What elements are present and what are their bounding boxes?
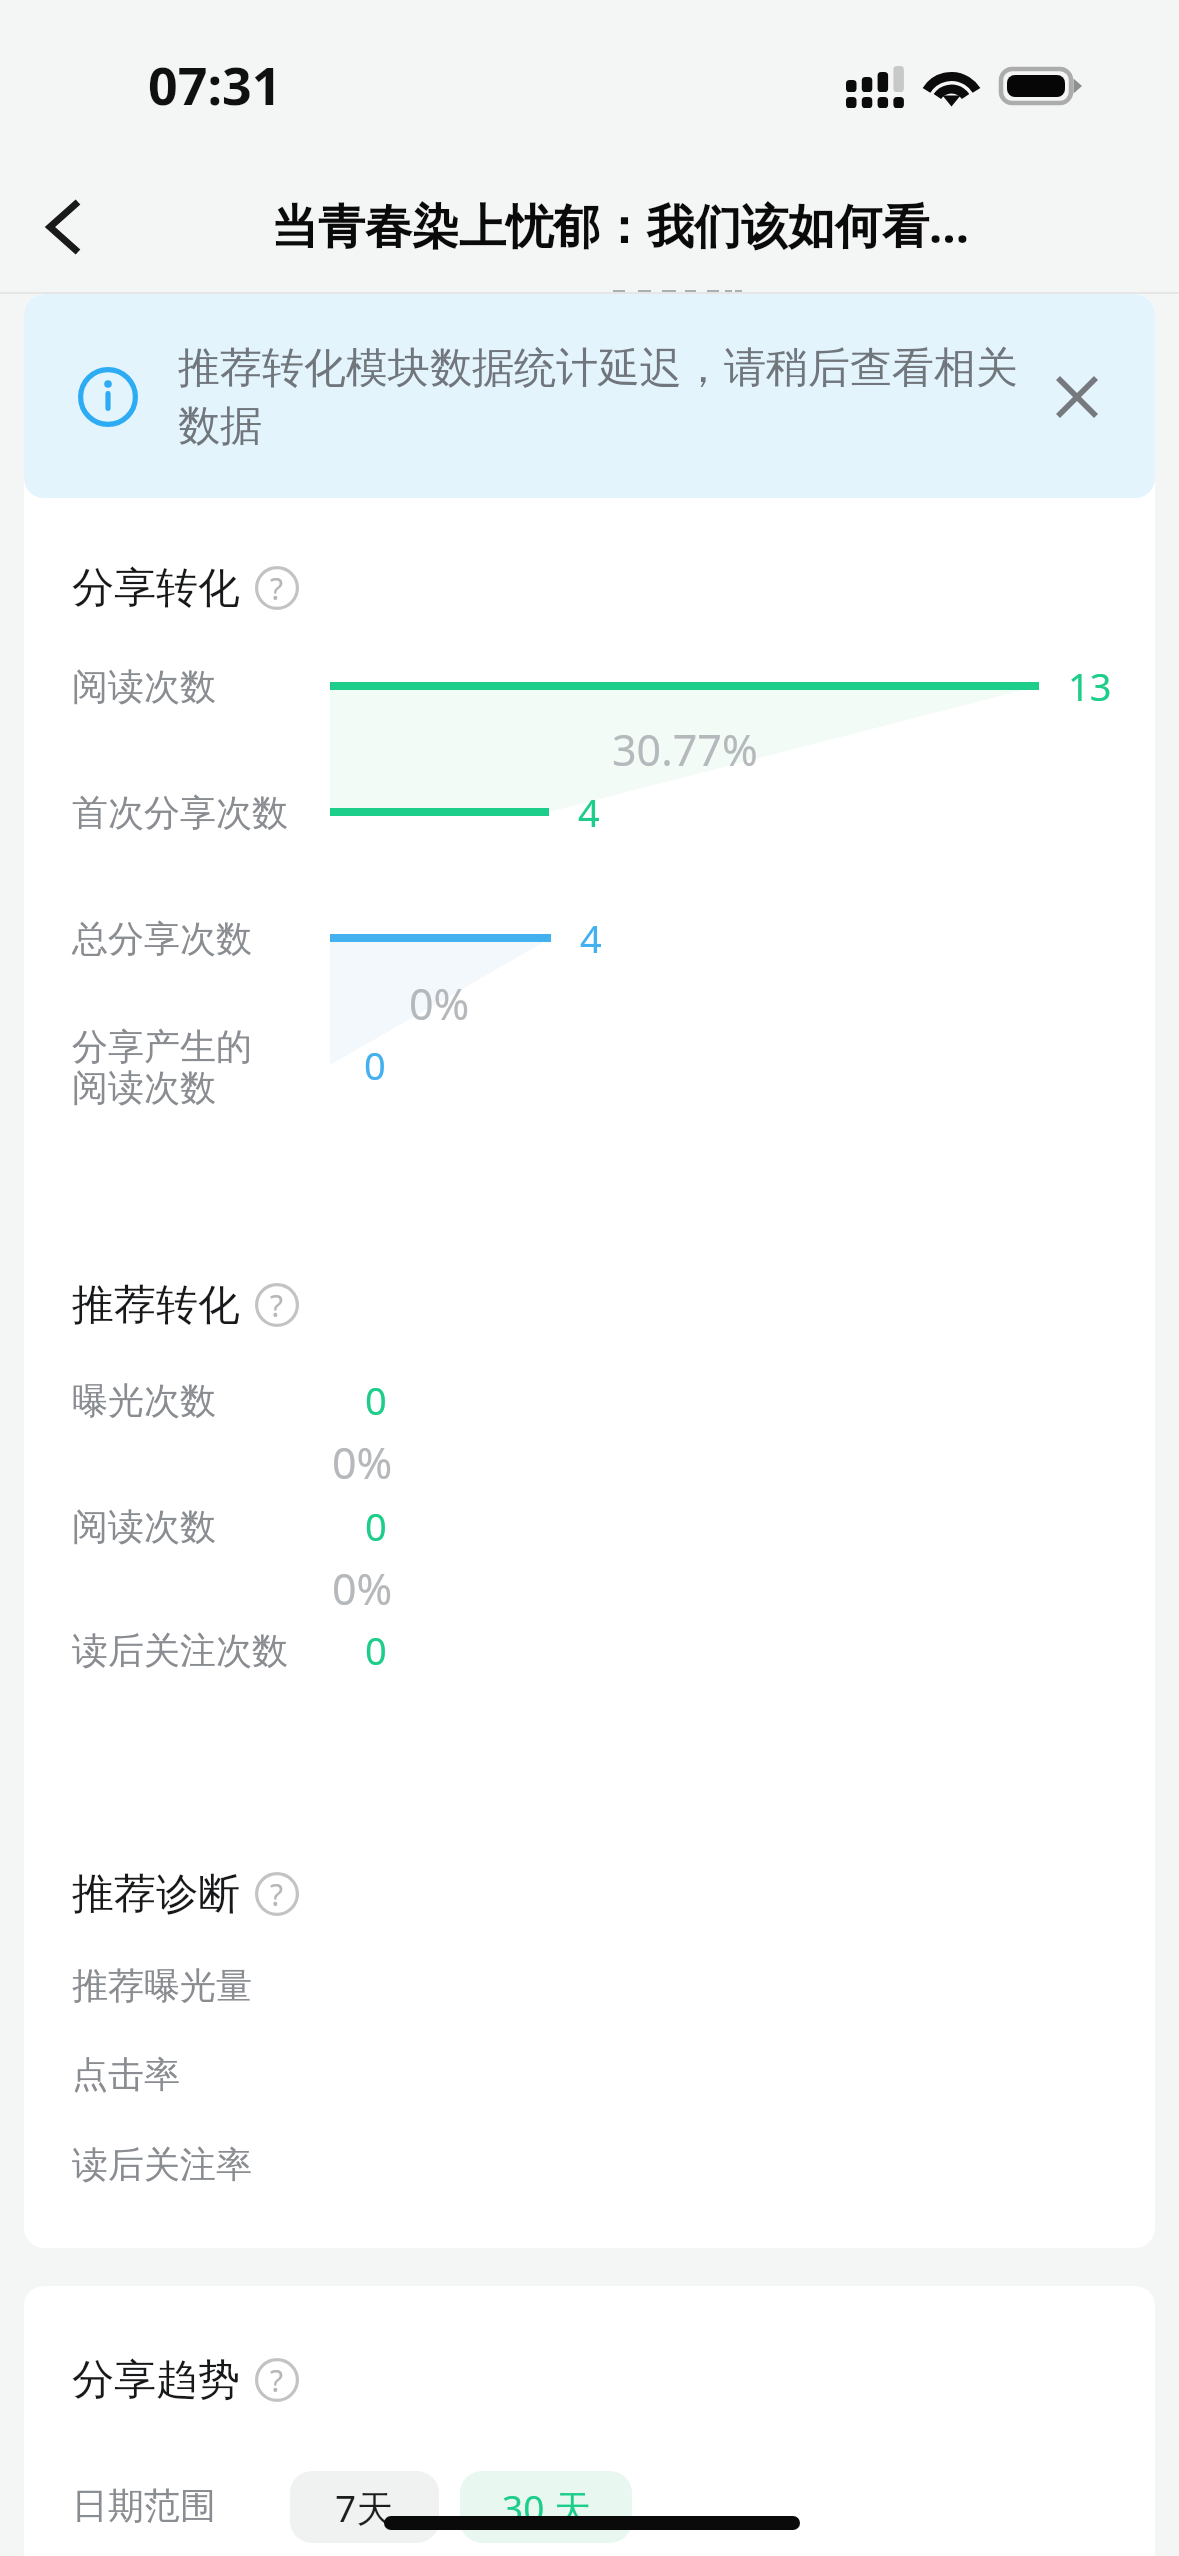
staticText: 曝光次数: [72, 1378, 216, 1423]
button[interactable]: Help: [254, 1282, 300, 1328]
staticText: 分享转化: [72, 562, 240, 615]
staticText: 首次分享次数: [72, 790, 288, 835]
staticText: 7天: [335, 2482, 394, 2533]
staticText: ?: [270, 1285, 284, 1326]
staticText: 4: [578, 786, 600, 838]
staticText: 分享产生的 阅读次数: [72, 1024, 252, 1111]
staticText: 读后关注率: [72, 2142, 252, 2187]
button[interactable]: Help: [254, 2357, 300, 2403]
staticText: 0: [365, 1624, 387, 1676]
button[interactable]: 点击率: [24, 2030, 1155, 2118]
button[interactable]: Close: [1037, 357, 1117, 437]
staticText: 推荐转化模块数据统计延迟，请稍后查看相关数据: [178, 342, 1028, 453]
staticText: ?: [270, 568, 284, 609]
staticText: 日期范围: [72, 2483, 216, 2528]
staticText: 07:31: [148, 49, 282, 120]
button[interactable]: 读后关注率: [24, 2120, 1155, 2208]
staticText: 0: [365, 1374, 387, 1426]
staticText: ?: [270, 2360, 284, 2401]
staticText: 读后关注次数: [72, 1628, 288, 1673]
staticText: ?: [270, 1874, 284, 1915]
button[interactable]: Back: [4, 162, 124, 292]
button[interactable]: 推荐曝光量: [24, 1941, 1155, 2029]
staticText: 13: [1068, 660, 1112, 712]
button[interactable]: Help: [254, 565, 300, 611]
staticText: 当青春染上忧郁：我们该如何看…: [271, 193, 970, 257]
staticText: 点击率: [72, 2052, 180, 2097]
staticText: 4: [580, 912, 602, 964]
staticText: 0: [364, 1039, 386, 1091]
staticText: 30 天: [502, 2482, 591, 2533]
button[interactable]: 7天: [290, 2471, 439, 2543]
staticText: 0: [365, 1500, 387, 1552]
button[interactable]: 30 天: [460, 2471, 632, 2543]
staticText: 0%: [332, 1433, 393, 1492]
staticText: 推荐曝光量: [72, 1963, 252, 2008]
staticText: 0%: [409, 974, 470, 1033]
staticText: 0%: [332, 1559, 393, 1618]
staticText: 推荐诊断: [72, 1868, 240, 1921]
button[interactable]: Help: [254, 1871, 300, 1917]
staticText: 分享趋势: [72, 2354, 240, 2407]
staticText: 30.77%: [612, 720, 758, 779]
staticText: 阅读次数: [72, 1504, 216, 1549]
staticText: 推荐转化: [72, 1279, 240, 1332]
staticText: 总分享次数: [72, 916, 252, 961]
staticText: 阅读次数: [72, 664, 216, 709]
